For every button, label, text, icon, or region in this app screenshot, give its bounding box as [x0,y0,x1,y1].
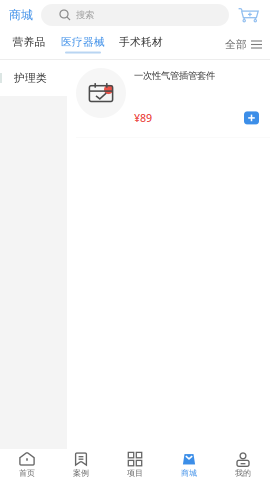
button[interactable]: 全部 [217,30,270,58]
button[interactable]: 首页 [0,449,54,480]
staticText: 一次性气管插管套件 [134,70,215,81]
staticText: 案例 [73,468,89,478]
button[interactable]: 护理类 [0,60,67,96]
staticText: 全部 [225,38,247,51]
staticText: 护理类 [14,71,47,84]
button[interactable]: 商城 [0,8,41,22]
button[interactable]: 案例 [54,449,108,480]
staticText: ¥89 [134,111,152,125]
button[interactable]: 我的 [216,449,270,480]
staticText: 医疗器械 [61,35,105,48]
staticText: 项目 [127,468,143,478]
staticText: 商城 [9,8,33,22]
staticText: 搜索 [76,9,94,21]
button[interactable]: 营养品 [4,30,54,58]
button[interactable]: 购物车 [229,1,268,29]
button[interactable]: 一次性气管插管套件 [67,60,270,138]
staticText: 我的 [235,468,251,478]
button[interactable]: 搜索 [41,4,229,26]
button[interactable]: 项目 [108,449,162,480]
staticText: 手术耗材 [119,35,163,48]
staticText: 营养品 [12,35,45,48]
button[interactable]: 商城 [162,449,216,480]
button[interactable]: 医疗器械 [54,30,112,58]
button[interactable]: 手术耗材 [112,30,170,58]
staticText: 首页 [19,468,35,478]
staticText: 商城 [181,468,197,478]
